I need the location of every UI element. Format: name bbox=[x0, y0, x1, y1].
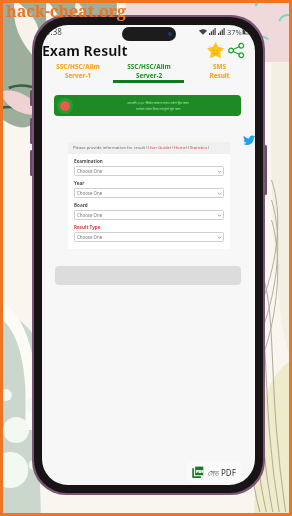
staticText: Statistics bbox=[190, 145, 208, 151]
button[interactable]: SMS Result bbox=[184, 62, 255, 88]
button[interactable]: এসএসসি ২০২৪ পরীক্ষার ফলাফল দেখতে এখানে ক… bbox=[54, 95, 241, 116]
staticText: Result Type bbox=[74, 224, 101, 230]
staticText: Home bbox=[174, 145, 186, 151]
staticText: PDF bbox=[196, 469, 204, 474]
staticText: Board bbox=[74, 202, 88, 208]
staticText: SSC/HSC/Alim Server-2 bbox=[127, 62, 171, 80]
button[interactable]: Choose One bbox=[74, 232, 224, 242]
staticText: Exam Result bbox=[42, 41, 128, 60]
button[interactable]: Rate app bbox=[206, 41, 225, 60]
staticText: Choose One bbox=[77, 168, 103, 174]
button[interactable]: Choose One bbox=[74, 210, 224, 220]
button[interactable]: Twitter bbox=[243, 133, 255, 146]
staticText: 9:38 bbox=[46, 26, 62, 37]
staticText: User Guide bbox=[148, 145, 170, 151]
staticText: এসএসসি ২০২৪ পরীক্ষার ফলাফল দেখতে এখানে ক… bbox=[127, 100, 189, 105]
staticText: SMS Result bbox=[209, 62, 230, 80]
staticText: hack-cheat.org bbox=[6, 0, 127, 22]
button[interactable]: Choose One bbox=[74, 166, 224, 176]
staticText: ) ( bbox=[170, 145, 174, 151]
button[interactable]: PDF bbox=[186, 462, 242, 482]
button[interactable]: Share bbox=[228, 42, 245, 59]
button[interactable]: SSC/HSC/Alim Server-2 bbox=[113, 62, 184, 88]
staticText: SSC/HSC/Alim Server-1 bbox=[56, 62, 100, 80]
staticText: Examination bbox=[74, 158, 103, 164]
staticText: ) bbox=[208, 145, 210, 151]
staticText: Choose One bbox=[77, 190, 103, 196]
button[interactable]: SSC/HSC/Alim Server-1 bbox=[42, 62, 113, 88]
staticText: Year bbox=[74, 180, 85, 186]
staticText: ) ( bbox=[186, 145, 190, 151]
staticText: Choose One bbox=[77, 234, 103, 240]
button[interactable]: Choose One bbox=[74, 188, 224, 198]
staticText: সেভ PDF bbox=[208, 467, 236, 478]
staticText: ফলাফল দেখতে নিচের তথ্যগুলো পূরণ করুন bbox=[136, 106, 181, 111]
staticText: Choose One bbox=[77, 212, 103, 218]
staticText: 37% bbox=[227, 27, 242, 37]
staticText: Please provide information for result ( bbox=[73, 145, 148, 151]
